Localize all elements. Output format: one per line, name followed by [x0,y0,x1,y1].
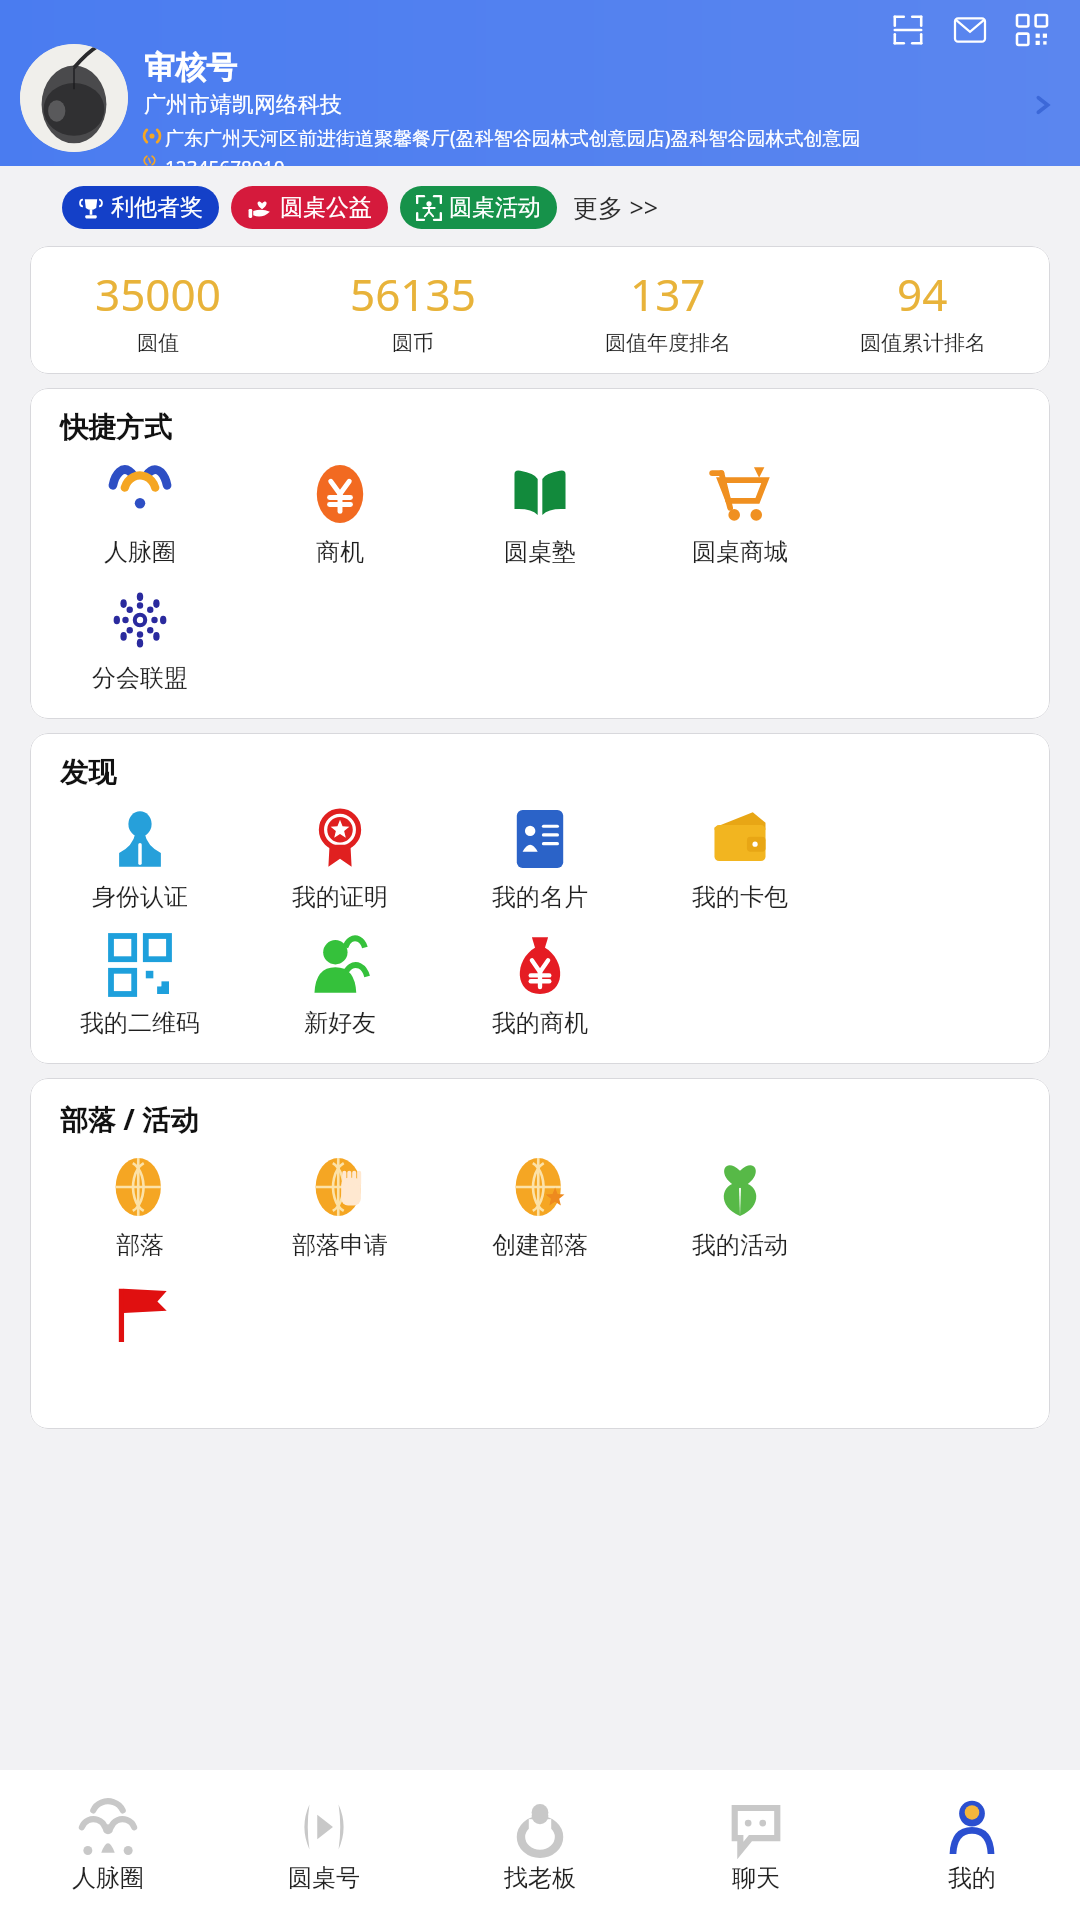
button[interactable]: 我的商机 [440,922,640,1048]
staticText: 圆桌号 [288,1863,360,1893]
staticText: 发现 [60,755,116,790]
staticText: 部落 [116,1230,164,1260]
button[interactable]: 我的卡包 [640,796,840,922]
staticText: 圆币 [392,330,434,356]
button[interactable]: 利他者奖 [62,186,219,229]
button[interactable]: 人脉圈 [0,1770,216,1920]
staticText: 圆值累计排名 [860,330,986,356]
staticText: 广州市靖凯网络科技 [144,91,342,119]
staticText: 12345678910 [165,155,285,166]
button[interactable]: 圆桌号 [216,1770,432,1920]
staticText: 137 [630,264,706,324]
staticText: 分会联盟 [92,663,188,693]
staticText: 我的名片 [492,882,588,912]
staticText: 圆值年度排名 [605,330,731,356]
button[interactable]: 我的证明 [240,796,440,922]
staticText: 人脉圈 [104,537,176,567]
staticText: 新好友 [304,1008,376,1038]
button[interactable]: 分会联盟 [40,577,240,703]
staticText: 圆桌商城 [692,537,788,567]
staticText: 商机 [316,537,364,567]
staticText: 更多 >> [573,190,659,224]
button[interactable]: 找老板 [432,1770,648,1920]
staticText: 部落申请 [292,1230,388,1260]
staticText: 我的商机 [492,1008,588,1038]
staticText: 利他者奖 [111,193,203,222]
button[interactable] [40,1270,240,1399]
button[interactable]: 部落申请 [240,1144,440,1270]
staticText: 我的二维码 [80,1008,200,1038]
button[interactable]: 我的 [864,1770,1080,1920]
staticText: 94 [897,264,948,324]
button[interactable]: 137 [540,264,795,356]
button[interactable]: 新好友 [240,922,440,1048]
button[interactable]: 56135 [285,264,540,356]
button[interactable]: 身份认证 [40,796,240,922]
button[interactable]: QR code [1010,8,1054,52]
staticText: 我的卡包 [692,882,788,912]
button[interactable]: 审核号 [20,44,1068,166]
button[interactable]: 圆桌公益 [231,186,388,229]
button[interactable]: 圆桌商城 [640,451,840,577]
staticText: 聊天 [732,1863,780,1893]
button[interactable]: 我的二维码 [40,922,240,1048]
staticText: 我的 [948,1863,996,1893]
button[interactable]: 部落 [40,1144,240,1270]
button[interactable]: 人脉圈 [40,451,240,577]
button[interactable]: 圆桌塾 [440,451,640,577]
staticText: 我的活动 [692,1230,788,1260]
staticText: 快捷方式 [60,410,172,445]
staticText: 我的证明 [292,882,388,912]
staticText: 35000 [95,264,221,324]
button[interactable]: 35000 [30,264,285,356]
staticText: 人脉圈 [72,1863,144,1893]
button[interactable]: 更多 >> [571,184,661,230]
button[interactable]: 聊天 [648,1770,864,1920]
staticText: 广东广州天河区前进街道聚馨餐厅(盈科智谷园林式创意园店)盈科智谷园林式创意园 [165,125,1018,151]
button[interactable]: 圆桌活动 [400,186,557,229]
staticText: 身份认证 [92,882,188,912]
button[interactable]: 创建部落 [440,1144,640,1270]
staticText: 部落 / 活动 [60,1100,199,1138]
button[interactable]: 我的活动 [640,1144,840,1270]
staticText: 找老板 [504,1863,576,1893]
staticText: 审核号 [144,48,237,87]
staticText: 圆桌公益 [280,193,372,222]
staticText: 圆桌塾 [504,537,576,567]
button[interactable]: 我的名片 [440,796,640,922]
button[interactable]: Messages [948,8,992,52]
button[interactable]: Scan [886,8,930,52]
staticText: 56135 [350,264,476,324]
button[interactable]: 94 [795,264,1050,356]
button[interactable]: More [1018,80,1068,130]
staticText: 创建部落 [492,1230,588,1260]
button[interactable]: 商机 [240,451,440,577]
staticText: 圆值 [137,330,179,356]
staticText: 圆桌活动 [449,193,541,222]
